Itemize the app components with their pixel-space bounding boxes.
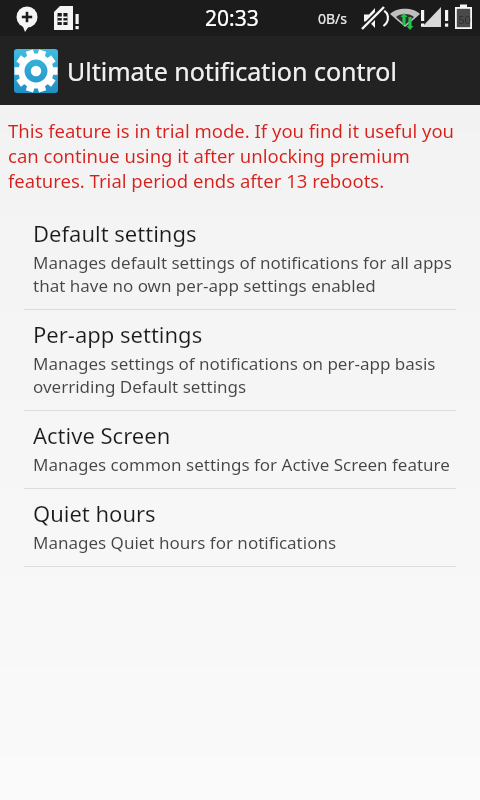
staticText: Manages settings of notifications on per… — [33, 352, 460, 398]
staticText: 20:33 — [205, 4, 259, 33]
staticText: Quiet hours — [33, 498, 156, 528]
other: App icon — [14, 49, 58, 93]
staticText: This feature is in trial mode. If you fi… — [8, 118, 472, 193]
staticText: Default settings — [33, 218, 197, 248]
staticText: Manages common settings for Active Scree… — [33, 453, 450, 476]
button[interactable]: Default settings — [0, 209, 480, 309]
staticText: Manages default settings of notification… — [33, 251, 460, 297]
staticText: Per-app settings — [33, 319, 203, 349]
button[interactable]: Active Screen — [0, 411, 480, 488]
staticText: Manages Quiet hours for notifications — [33, 531, 337, 554]
staticText: Active Screen — [33, 420, 171, 450]
staticText: 0B/s — [318, 9, 348, 28]
staticText: 50 — [458, 12, 471, 27]
staticText: Ultimate notification control — [67, 54, 397, 88]
button[interactable]: Per-app settings — [0, 310, 480, 410]
button[interactable]: Quiet hours — [0, 489, 480, 566]
